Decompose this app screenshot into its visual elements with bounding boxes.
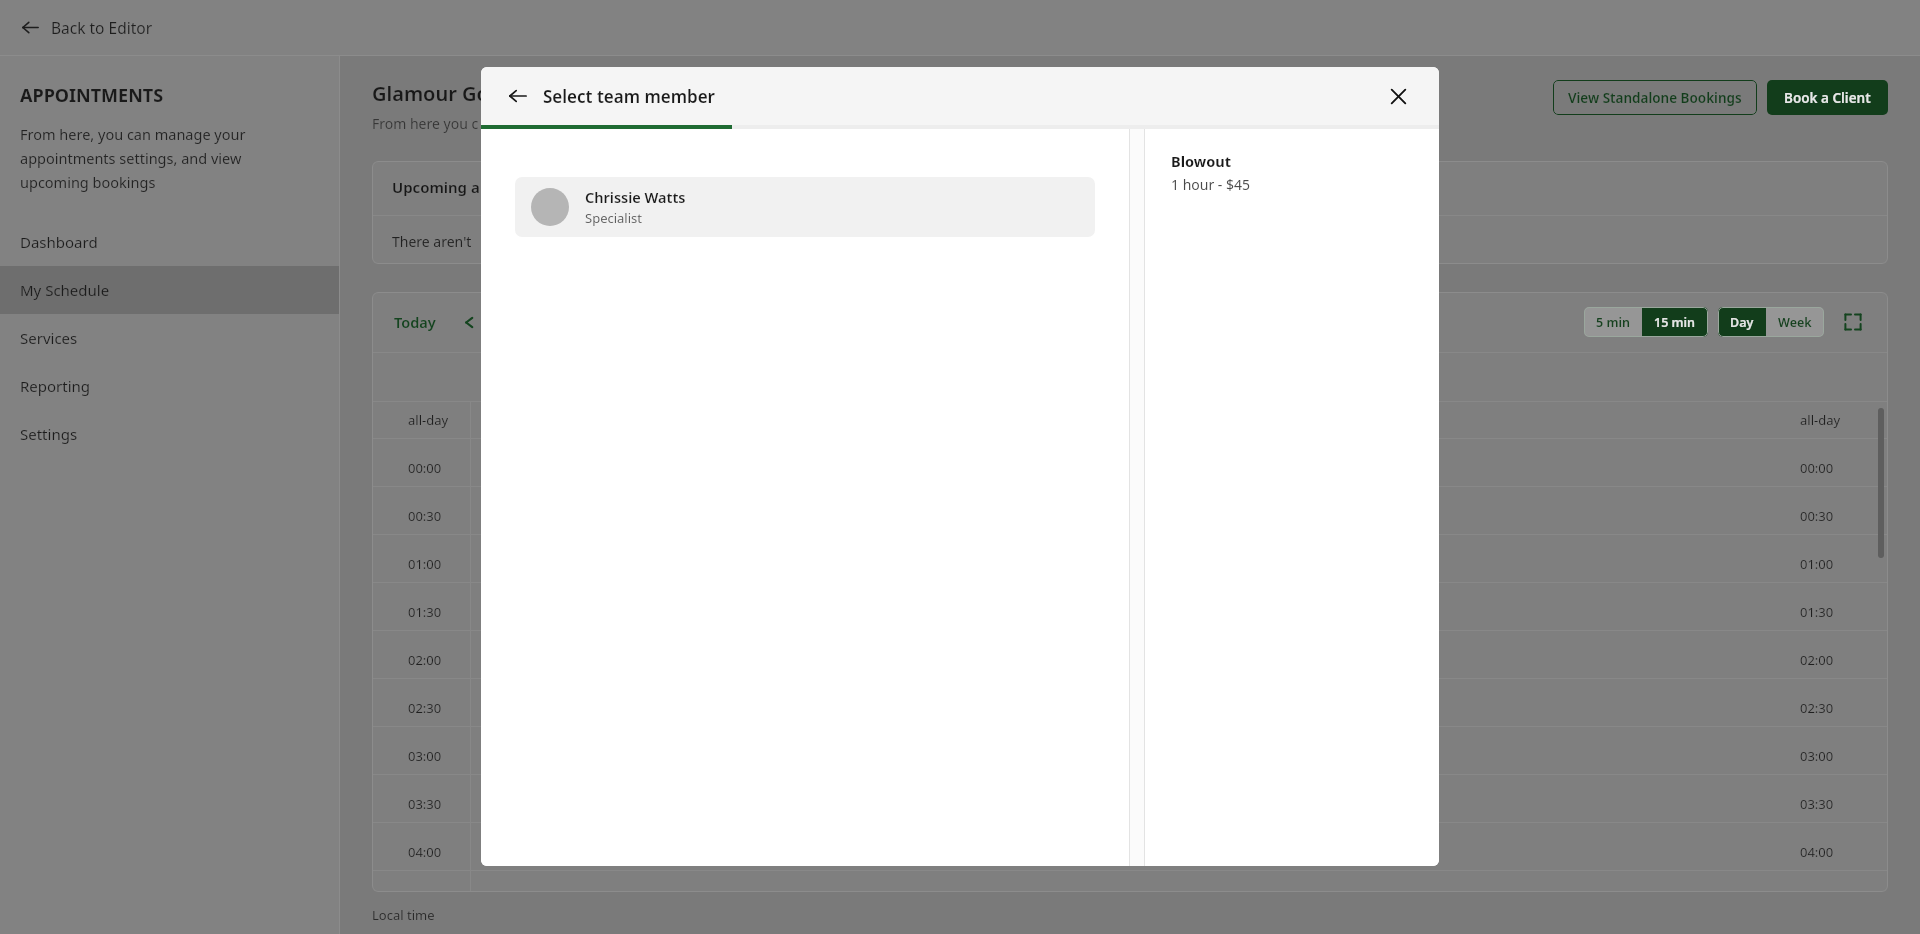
- staticText: 04:00: [408, 843, 442, 861]
- staticText: Reporting: [20, 376, 91, 396]
- staticText: Specialist: [585, 209, 642, 227]
- staticText: Local time: [372, 906, 435, 924]
- button[interactable]: Week: [1766, 307, 1824, 337]
- staticText: 02:00: [1800, 651, 1888, 669]
- staticText: 01:00: [1800, 555, 1888, 573]
- button[interactable]: Dashboard: [0, 218, 339, 266]
- staticText: 15 min: [1654, 314, 1696, 331]
- staticText: Today: [394, 312, 436, 332]
- button[interactable]: Services: [0, 314, 339, 362]
- staticText: Dashboard: [20, 232, 98, 252]
- staticText: upcoming bookings: [20, 172, 156, 192]
- staticText: 03:00: [408, 747, 442, 765]
- staticText: 04:00: [1800, 843, 1888, 861]
- button[interactable]: Fullscreen: [1840, 309, 1866, 335]
- button[interactable]: Back to Editor: [22, 0, 1920, 55]
- staticText: 03:30: [408, 795, 442, 813]
- staticText: appointments settings, and view: [20, 148, 242, 168]
- staticText: 03:00: [1800, 747, 1888, 765]
- staticText: From here, you can manage your: [20, 124, 246, 144]
- staticText: Select team member: [543, 85, 715, 108]
- button[interactable]: Previous: [458, 311, 480, 333]
- staticText: Day: [1730, 314, 1754, 331]
- staticText: 00:30: [1800, 507, 1888, 525]
- staticText: APPOINTMENTS: [20, 83, 164, 108]
- staticText: 00:30: [408, 507, 442, 525]
- staticText: 00:00: [408, 459, 442, 477]
- staticText: Chrissie Watts: [585, 187, 686, 207]
- button[interactable]: Book a Client: [1767, 80, 1888, 115]
- button[interactable]: 5 min: [1584, 307, 1642, 337]
- staticText: My Schedule: [20, 280, 110, 300]
- staticText: 02:00: [408, 651, 442, 669]
- staticText: all-day: [408, 411, 449, 429]
- staticText: Glamour Go: [372, 80, 489, 107]
- button[interactable]: Back: [501, 79, 535, 113]
- staticText: 03:30: [1800, 795, 1888, 813]
- staticText: 00:00: [1800, 459, 1888, 477]
- staticText: Upcoming a: [392, 177, 480, 197]
- staticText: 01:30: [1800, 603, 1888, 621]
- button[interactable]: View Standalone Bookings: [1553, 80, 1757, 115]
- staticText: Blowout: [1171, 151, 1231, 171]
- staticText: 02:30: [408, 699, 442, 717]
- staticText: There aren't: [392, 232, 472, 251]
- staticText: Settings: [20, 424, 78, 444]
- button[interactable]: 15 min: [1642, 307, 1708, 337]
- button[interactable]: Chrissie Watts: [515, 177, 1095, 237]
- staticText: From here you c: [372, 114, 479, 133]
- staticText: 1 hour - $45: [1171, 175, 1251, 194]
- staticText: Services: [20, 328, 78, 348]
- button[interactable]: Reporting: [0, 362, 339, 410]
- button[interactable]: Today: [394, 312, 436, 332]
- staticText: Book a Client: [1784, 89, 1871, 107]
- staticText: 5 min: [1596, 314, 1630, 331]
- staticText: Back to Editor: [51, 17, 153, 38]
- staticText: Week: [1778, 314, 1812, 331]
- staticText: all-day: [1800, 411, 1888, 429]
- staticText: 01:30: [408, 603, 442, 621]
- button[interactable]: Settings: [0, 410, 339, 458]
- button[interactable]: Day: [1718, 307, 1766, 337]
- staticText: 02:30: [1800, 699, 1888, 717]
- button[interactable]: Close: [1381, 79, 1415, 113]
- staticText: View Standalone Bookings: [1568, 89, 1742, 107]
- staticText: 01:00: [408, 555, 442, 573]
- button[interactable]: My Schedule: [0, 266, 339, 314]
